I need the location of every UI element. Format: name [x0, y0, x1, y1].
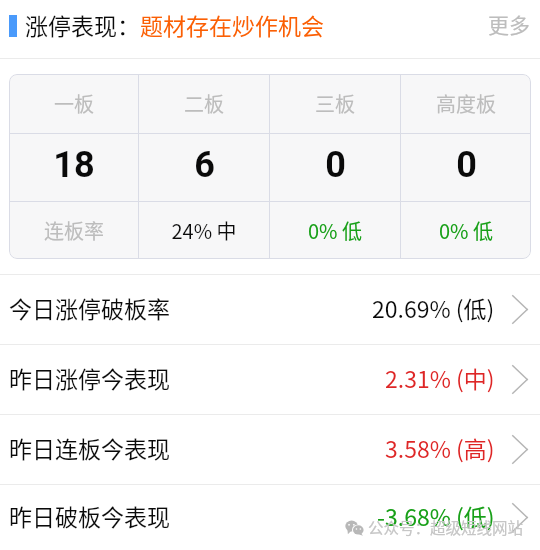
staticText: 高度板	[436, 89, 496, 118]
button[interactable]: 昨日涨停今表现	[0, 345, 540, 414]
staticText: 2.31% (中)	[385, 361, 495, 394]
other: 查看详情	[512, 435, 528, 464]
staticText: 0	[456, 144, 477, 186]
staticText: 20.69% (低)	[372, 291, 495, 324]
staticText: 6	[194, 144, 215, 186]
staticText: 昨日破板今表现	[9, 499, 170, 532]
staticText: 涨停表现：	[25, 8, 140, 41]
staticText: 昨日涨停今表现	[9, 361, 170, 394]
staticText: 三板	[315, 89, 355, 118]
button[interactable]: 昨日破板今表现	[0, 485, 540, 550]
other: 查看详情	[512, 295, 528, 324]
staticText: 题材存在炒作机会	[140, 8, 324, 41]
staticText: 更多	[488, 9, 530, 39]
staticText: 18	[53, 144, 95, 186]
button[interactable]: 更多	[484, 3, 534, 45]
staticText: 今日涨停破板率	[9, 291, 170, 324]
staticText: 二板	[184, 89, 224, 118]
other: 查看详情	[512, 365, 528, 394]
staticText: 连板率	[44, 216, 104, 245]
button[interactable]: 昨日连板今表现	[0, 415, 540, 484]
staticText: 昨日连板今表现	[9, 431, 170, 464]
button[interactable]: 今日涨停破板率	[0, 275, 540, 344]
staticText: 0% 低	[308, 216, 362, 245]
other: 查看详情	[512, 503, 528, 532]
staticText: 3.58% (高)	[385, 431, 495, 464]
staticText: -3.68% (低)	[377, 499, 495, 532]
staticText: 一板	[54, 89, 94, 118]
staticText: 0	[325, 144, 346, 186]
staticText: 24% 中	[171, 216, 237, 245]
staticText: 0% 低	[439, 216, 493, 245]
staticText: 公众号：超级短线网站	[368, 516, 524, 538]
